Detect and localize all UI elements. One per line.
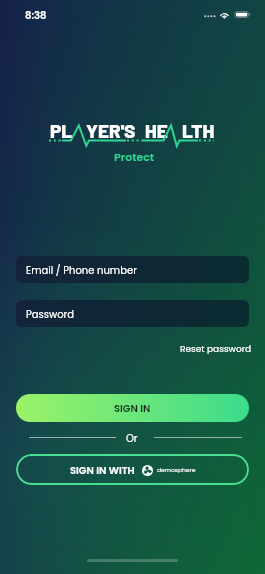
staticText: YER'S bbox=[86, 119, 136, 142]
button[interactable]: Password bbox=[16, 300, 249, 327]
staticText: SIGN IN WITH bbox=[70, 463, 135, 477]
button[interactable]: Email / Phone number bbox=[16, 256, 249, 283]
staticText: Email / Phone number bbox=[26, 263, 137, 277]
staticText: demosphere bbox=[157, 466, 196, 474]
staticText: PL bbox=[50, 119, 73, 142]
staticText: Password bbox=[26, 307, 75, 321]
staticText: HE bbox=[145, 119, 168, 142]
staticText: 8:38 bbox=[25, 8, 47, 22]
staticText: Protect bbox=[114, 149, 155, 164]
staticText: LTH bbox=[182, 119, 215, 142]
button[interactable]: SIGN IN bbox=[16, 394, 249, 422]
staticText: Reset password bbox=[180, 343, 252, 356]
button[interactable]: SIGN IN WITH bbox=[16, 454, 249, 485]
staticText: SIGN IN bbox=[114, 401, 151, 415]
button[interactable]: Reset password bbox=[178, 341, 254, 358]
staticText: Or bbox=[126, 431, 138, 445]
